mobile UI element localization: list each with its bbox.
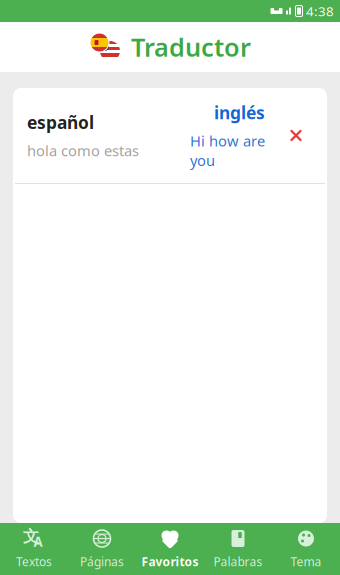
- button[interactable]: Palabras: [204, 523, 272, 575]
- button[interactable]: español: [13, 88, 327, 183]
- staticText: 4:38: [306, 2, 334, 20]
- staticText: Hi how are you: [190, 131, 265, 170]
- button[interactable]: Tema: [272, 523, 340, 575]
- staticText: español: [27, 111, 94, 134]
- staticText: Traductor: [131, 30, 251, 64]
- staticText: hola como estas: [27, 141, 139, 160]
- staticText: Favoritos: [141, 553, 198, 569]
- staticText: Tema: [290, 553, 321, 569]
- staticText: Textos: [16, 553, 52, 569]
- button[interactable]: Páginas: [68, 523, 136, 575]
- staticText: Páginas: [80, 553, 124, 569]
- button[interactable]: Eliminar favorito: [285, 124, 307, 146]
- staticText: A: [33, 533, 42, 550]
- staticText: inglés: [214, 101, 265, 124]
- button[interactable]: 文: [0, 523, 68, 575]
- staticText: 文: [23, 527, 39, 546]
- button[interactable]: Favoritos: [136, 523, 204, 575]
- staticText: Palabras: [213, 553, 262, 569]
